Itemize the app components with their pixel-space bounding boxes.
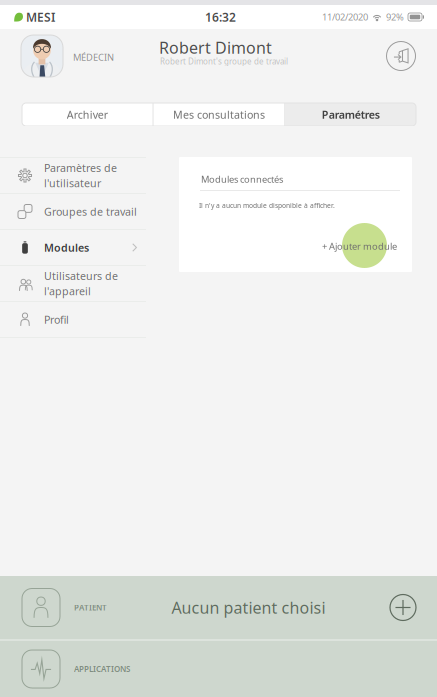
staticText: Utilisateurs de xyxy=(44,269,118,283)
staticText: Paramètres de xyxy=(44,161,117,175)
staticText: PATIENT xyxy=(74,602,107,613)
staticText: Robert Dimont xyxy=(159,37,272,58)
staticText: 16:32 xyxy=(205,9,236,25)
button[interactable]: Utilisateurs de xyxy=(0,266,146,301)
staticText: Modules xyxy=(44,240,89,255)
button[interactable]: Se déconnecter xyxy=(386,41,416,71)
staticText: + Ajouter module xyxy=(322,240,397,252)
button[interactable]: Paramétres xyxy=(285,103,416,126)
button[interactable]: Mes consultations xyxy=(154,103,284,126)
staticText: Robert Dimont's groupe de travail xyxy=(160,56,288,67)
staticText: l'utilisateur xyxy=(44,176,101,190)
staticText: l'appareil xyxy=(44,284,91,298)
staticText: Mes consultations xyxy=(173,107,265,122)
button[interactable]: Modules xyxy=(0,230,146,265)
staticText: Aucun patient choisi xyxy=(171,597,325,618)
staticText: APPLICATIONS xyxy=(74,664,130,674)
staticText: Modules connectés xyxy=(201,173,283,185)
staticText: Groupes de travail xyxy=(44,204,137,219)
staticText: Il n'y a aucun module disponible à affic… xyxy=(199,201,335,210)
button[interactable]: + Ajouter module xyxy=(319,237,400,255)
staticText: MESI xyxy=(26,9,55,25)
staticText: Profil xyxy=(44,312,69,327)
button[interactable]: Archiver xyxy=(22,103,153,126)
staticText: MÉDECIN xyxy=(73,51,114,63)
staticText: Archiver xyxy=(67,107,108,122)
button[interactable]: Profil xyxy=(0,302,146,337)
staticText: 92% xyxy=(386,11,404,23)
staticText: Paramétres xyxy=(322,107,380,122)
button[interactable]: Paramètres de xyxy=(0,158,146,193)
button[interactable]: PATIENT xyxy=(0,576,437,639)
button[interactable]: APPLICATIONS xyxy=(0,641,437,697)
staticText: 11/02/2020 xyxy=(322,11,368,23)
button[interactable]: Groupes de travail xyxy=(0,194,146,229)
